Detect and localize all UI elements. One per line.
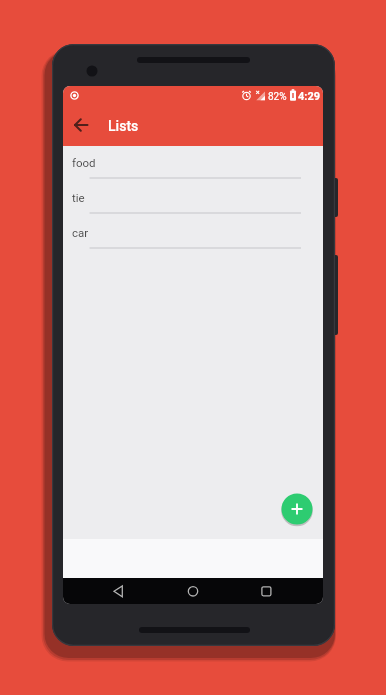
- staticText: 82%: [268, 91, 287, 103]
- staticText: 4:29: [298, 90, 321, 103]
- staticText: car: [72, 226, 89, 239]
- staticText: tie: [72, 191, 85, 204]
- staticText: Lists: [108, 118, 139, 134]
- staticText: food: [72, 156, 96, 169]
